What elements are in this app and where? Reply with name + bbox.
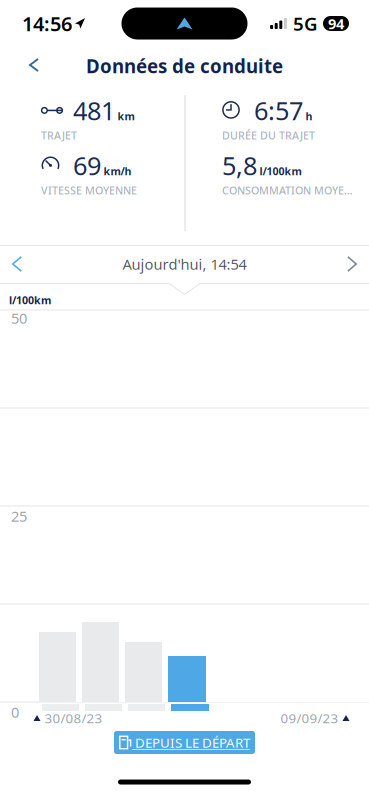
staticText: km	[117, 109, 134, 123]
staticText: km/h	[103, 164, 131, 178]
staticText: 09/09/23	[280, 709, 338, 727]
staticText: DEPUIS LE DÉPART	[132, 734, 250, 751]
staticText: 25	[11, 506, 27, 526]
button[interactable]: Jour précédent	[0, 245, 37, 283]
staticText: TRAJET	[41, 128, 77, 142]
staticText: 6:57	[254, 94, 303, 127]
button[interactable]: Jour suivant	[332, 245, 369, 283]
staticText: CONSOMMATION MOYE…	[222, 183, 353, 197]
staticText: h	[305, 109, 312, 123]
button[interactable]: Retour	[12, 45, 56, 85]
staticText: VITESSE MOYENNE	[41, 183, 137, 197]
staticText: 14:56	[22, 10, 72, 37]
staticText: 481	[73, 94, 115, 127]
staticText: 0	[11, 702, 19, 722]
staticText: 5,8	[222, 149, 257, 182]
staticText: l/100km	[9, 293, 51, 307]
staticText: l/100km	[259, 164, 301, 178]
staticText: Données de conduite	[86, 54, 283, 78]
staticText: 30/08/23	[44, 709, 102, 727]
staticText: 50	[11, 308, 27, 328]
staticText: 94	[328, 14, 344, 33]
staticText: 69	[73, 149, 101, 182]
button[interactable]: DEPUIS LE DÉPART	[114, 731, 255, 754]
staticText: Aujourd'hui, 14:54	[122, 254, 246, 274]
staticText: DURÉE DU TRAJET	[222, 128, 315, 142]
staticText: 5G	[293, 11, 318, 36]
